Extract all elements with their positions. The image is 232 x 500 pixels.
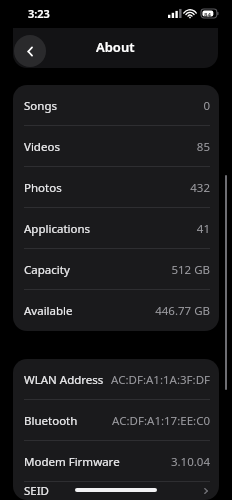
button[interactable]: Available — [13, 290, 219, 331]
button[interactable]: Modem Firmware — [13, 441, 219, 482]
staticText: Tips & Service History — [24, 38, 141, 54]
staticText: Bluetooth — [24, 413, 78, 429]
staticText: 512 GB — [171, 262, 210, 278]
staticText: 3.10.04 — [170, 454, 210, 470]
staticText: 84 — [204, 11, 211, 19]
staticText: AC:DF:A1:17:EE:C0 — [112, 413, 210, 429]
button[interactable]: Videos — [13, 126, 219, 167]
button[interactable]: Songs — [13, 85, 219, 126]
staticText: Songs — [24, 98, 57, 114]
button[interactable]: Bluetooth — [13, 400, 219, 441]
button[interactable]: SEID — [13, 482, 219, 500]
staticText: AC:DF:A1:1A:3F:DF — [111, 372, 210, 388]
staticText: 41 — [196, 221, 210, 237]
staticText: 3:23 — [28, 6, 50, 21]
button[interactable]: Capacity — [13, 249, 219, 290]
staticText: 0 — [203, 98, 210, 114]
button[interactable]: WLAN Address — [13, 359, 219, 400]
staticText: Photos — [24, 180, 62, 196]
staticText: About — [96, 38, 135, 56]
staticText: Capacity — [24, 262, 70, 278]
staticText: 85 — [196, 139, 210, 155]
staticText: Available — [24, 303, 73, 319]
staticText: 446.77 GB — [155, 303, 210, 319]
staticText: SEID — [24, 483, 50, 499]
button[interactable]: Back — [14, 35, 46, 67]
button[interactable]: Photos — [13, 167, 219, 208]
staticText: Applications — [24, 221, 91, 237]
staticText: WLAN Address — [24, 372, 104, 388]
button[interactable]: Applications — [13, 208, 219, 249]
staticText: 432 — [190, 180, 210, 196]
staticText: Videos — [24, 139, 60, 155]
staticText: Modem Firmware — [24, 454, 120, 470]
